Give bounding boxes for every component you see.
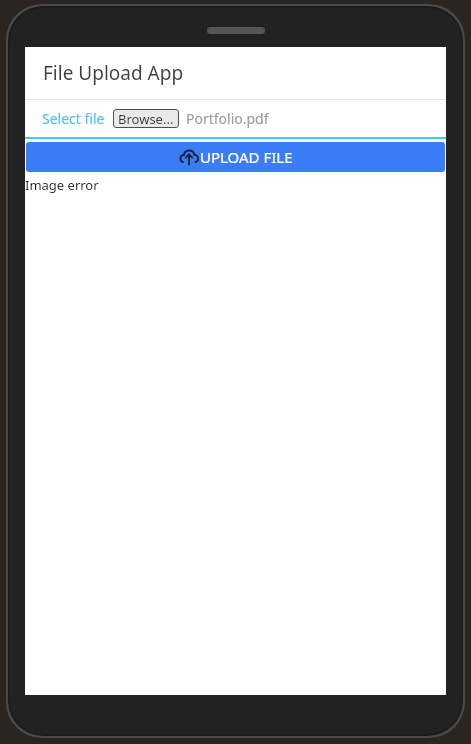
button[interactable]: Browse...	[113, 109, 179, 128]
staticText: Portfolio.pdf	[186, 109, 269, 128]
staticText: Browse...	[118, 110, 174, 128]
staticText: File Upload App	[43, 60, 184, 86]
other: Upload file	[178, 146, 200, 168]
staticText: UPLOAD FILE	[200, 147, 293, 167]
staticText: Image error	[25, 176, 99, 194]
button[interactable]: Select file	[42, 109, 105, 128]
button[interactable]: Upload file	[26, 142, 445, 172]
